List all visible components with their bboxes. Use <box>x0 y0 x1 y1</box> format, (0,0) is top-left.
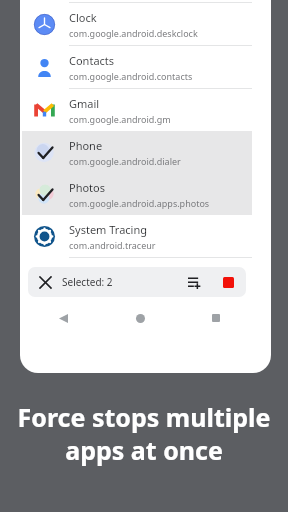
staticText: Clock <box>69 10 97 25</box>
button[interactable]: Clock <box>20 3 271 45</box>
staticText: Contacts <box>69 53 115 68</box>
button[interactable]: Recent apps <box>201 305 231 331</box>
button[interactable]: Gmail <box>20 89 271 131</box>
button[interactable]: Back <box>48 305 78 331</box>
staticText: System Tracing <box>69 222 147 237</box>
staticText: com.google.android.gm <box>69 113 171 125</box>
staticText: Photos <box>69 180 106 195</box>
staticText: Gmail <box>69 96 100 111</box>
staticText: com.google.android.apps.photos <box>69 197 210 209</box>
staticText: Selected: 2 <box>62 275 113 289</box>
staticText: com.android.traceur <box>69 239 156 251</box>
staticText: com.google.android.contacts <box>69 70 193 82</box>
staticText: com.google.android.deskclock <box>69 27 198 39</box>
button[interactable]: System Tracing <box>20 215 271 257</box>
button[interactable]: Contacts <box>20 46 271 88</box>
button[interactable]: Phone <box>20 131 271 173</box>
button[interactable]: Clear selection <box>28 267 62 297</box>
staticText: Force stops multiple apps at once <box>10 400 278 467</box>
button[interactable]: Add to list <box>178 267 210 297</box>
button[interactable]: Home <box>125 305 155 331</box>
staticText: Phone <box>69 138 103 153</box>
button[interactable]: Photos <box>20 173 271 215</box>
staticText: com.google.android.dialer <box>69 155 181 167</box>
button[interactable]: Force stop <box>210 267 246 297</box>
